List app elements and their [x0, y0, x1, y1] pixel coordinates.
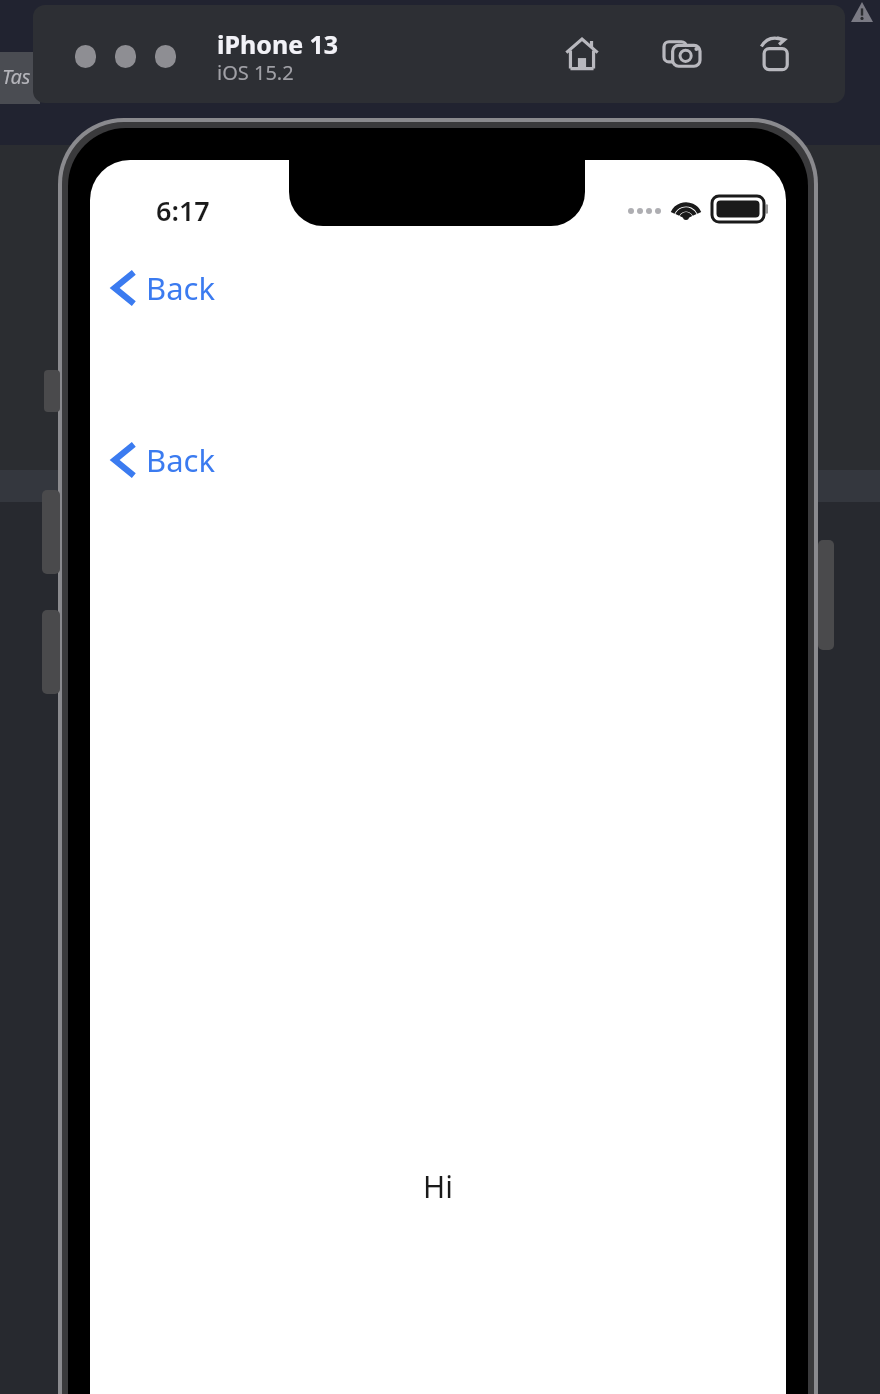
- button[interactable]: Back: [102, 260, 221, 316]
- staticText: 6:17: [156, 192, 210, 229]
- staticText: Back: [146, 267, 215, 309]
- button[interactable]: [155, 45, 176, 68]
- button[interactable]: Rotate: [748, 27, 802, 81]
- staticText: Back: [146, 439, 215, 481]
- button[interactable]: Home: [555, 27, 609, 81]
- staticText: Hi: [423, 1166, 453, 1207]
- button[interactable]: Screenshot: [655, 27, 709, 81]
- staticText: Tas: [2, 63, 31, 90]
- button[interactable]: [75, 45, 96, 68]
- button[interactable]: Back: [102, 432, 221, 488]
- staticText: iPhone 13: [217, 27, 339, 61]
- other: Warning: [851, 2, 873, 22]
- staticText: iOS 15.2: [217, 59, 294, 86]
- button[interactable]: [115, 45, 136, 68]
